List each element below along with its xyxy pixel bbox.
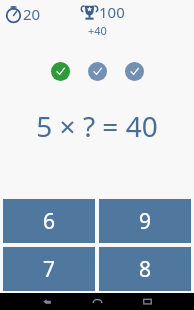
button[interactable]: 7	[3, 247, 95, 291]
staticText: 6	[43, 207, 56, 236]
button[interactable]: 8	[99, 247, 191, 291]
staticText: 100	[99, 2, 125, 22]
other: Trophy score	[81, 4, 98, 21]
button[interactable]: Trophy score	[81, 0, 125, 37]
staticText: 7	[43, 255, 56, 284]
button[interactable]: Answered correctly	[88, 62, 107, 81]
button[interactable]: Answered correctly	[125, 62, 144, 81]
staticText: 8	[139, 255, 152, 284]
staticText: 20	[23, 4, 41, 24]
staticText: 9	[139, 207, 152, 236]
staticText: +40	[88, 23, 107, 38]
button[interactable]: Answered correctly	[51, 62, 70, 81]
button[interactable]: Timer	[3, 2, 43, 26]
other: Timer	[5, 6, 22, 23]
button[interactable]: Recent apps	[130, 293, 164, 310]
button[interactable]: 9	[99, 199, 191, 243]
staticText: 5 × ? = 40	[36, 107, 158, 145]
button[interactable]: 6	[3, 199, 95, 243]
button[interactable]: Home	[80, 293, 114, 310]
button[interactable]: Back	[30, 293, 64, 310]
